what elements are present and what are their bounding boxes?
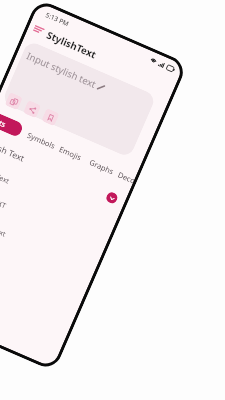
button[interactable]: Stylish Text <box>0 163 11 187</box>
staticText: STYLISH TEXT <box>0 184 8 211</box>
staticText: 5:13 PM <box>44 10 71 28</box>
staticText: Emojis <box>58 144 84 163</box>
button[interactable]: Stylish Text <box>0 216 8 240</box>
staticText: Fonts <box>0 113 8 129</box>
staticText: Stylish Text <box>0 163 11 187</box>
staticText: Decorations <box>116 169 136 185</box>
staticText: Input stylish text <box>25 49 99 91</box>
staticText: Stylish Text <box>0 136 27 165</box>
button[interactable]: Stylish Text <box>0 136 27 165</box>
button[interactable]: Input stylish text <box>25 49 107 95</box>
staticText: StylishText <box>44 28 98 62</box>
staticText: Symbols <box>26 130 57 151</box>
button[interactable]: Emojis <box>58 144 84 163</box>
button[interactable]: Share <box>23 100 41 118</box>
button[interactable]: Graphs <box>88 157 116 176</box>
button[interactable]: STYLISH TEXT <box>0 184 8 211</box>
button[interactable]: StylishText <box>44 28 98 62</box>
button[interactable]: Decorations <box>116 169 136 185</box>
button[interactable]: Menu <box>31 21 46 37</box>
button[interactable]: Fonts <box>0 110 24 138</box>
staticText: Stylish Text <box>0 216 8 240</box>
staticText: Graphs <box>88 157 116 176</box>
button[interactable]: Symbols <box>26 130 57 151</box>
button[interactable]: Scroll down <box>105 191 119 205</box>
button[interactable]: Copy <box>4 92 23 110</box>
button[interactable]: Bookmark <box>41 108 60 126</box>
